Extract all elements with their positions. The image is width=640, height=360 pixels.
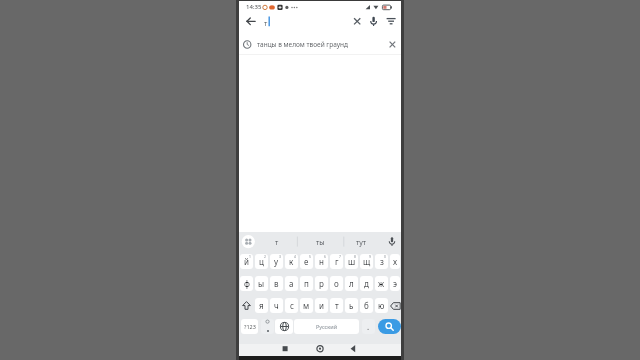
button[interactable] [349, 15, 366, 33]
button[interactable] [239, 298, 254, 313]
button[interactable]: к [285, 254, 298, 269]
staticText: п [304, 278, 309, 289]
button[interactable]: м [300, 298, 313, 313]
button[interactable]: танцы в мелом твоей граунд [239, 36, 401, 53]
button[interactable] [242, 15, 261, 33]
button[interactable]: ты [298, 232, 342, 254]
staticText: м [303, 300, 310, 311]
button[interactable]: ж [375, 276, 388, 291]
staticText: ч [274, 300, 279, 311]
staticText: з [380, 256, 384, 267]
button[interactable]: ч [270, 298, 283, 313]
button[interactable]: щ [360, 254, 373, 269]
staticText: ю [378, 300, 385, 311]
staticText: у [274, 256, 279, 267]
staticText: . [367, 321, 370, 332]
button[interactable]: х [390, 254, 400, 269]
button[interactable]: . [362, 319, 375, 334]
button[interactable]: е [300, 254, 313, 269]
staticText: 5 [309, 254, 311, 258]
staticText: к [289, 256, 294, 267]
staticText: ж [378, 278, 385, 289]
button[interactable]: ь [345, 298, 358, 313]
button[interactable]: ю [375, 298, 388, 313]
button[interactable]: э [390, 276, 400, 291]
button[interactable] [366, 15, 382, 33]
staticText: о [334, 278, 339, 289]
button[interactable]: с [285, 298, 298, 313]
button[interactable]: ц [255, 254, 268, 269]
staticText: т [335, 300, 339, 311]
button[interactable]: в [270, 276, 283, 291]
staticText: ц [259, 256, 264, 267]
button[interactable] [314, 344, 326, 356]
button[interactable]: д [360, 276, 373, 291]
staticText: 0 [384, 254, 386, 258]
staticText: б [364, 300, 369, 311]
button[interactable]: ф [240, 276, 253, 291]
staticText: 4 [294, 254, 296, 258]
staticText: ш [348, 256, 356, 267]
staticText: 9 [369, 254, 371, 258]
button[interactable]: Русский [294, 319, 359, 334]
button[interactable]: я [255, 298, 268, 313]
button[interactable]: н [315, 254, 328, 269]
staticText: тут [356, 238, 367, 248]
staticText: х [393, 256, 398, 267]
button[interactable] [275, 319, 293, 334]
button[interactable]: й [240, 254, 253, 269]
button[interactable]: ш [345, 254, 358, 269]
button[interactable] [384, 233, 400, 253]
button[interactable] [383, 15, 399, 33]
staticText: 8 [354, 254, 356, 258]
staticText: й [244, 256, 249, 267]
staticText: 2 [264, 254, 266, 258]
staticText: н [319, 256, 324, 267]
button[interactable]: т [330, 298, 343, 313]
staticText: ?123 [244, 323, 256, 330]
staticText: ты [316, 238, 325, 248]
button[interactable]: р [315, 276, 328, 291]
button[interactable] [241, 235, 256, 250]
staticText: ы [258, 278, 265, 289]
button[interactable]: п [300, 276, 313, 291]
button[interactable]: г [330, 254, 343, 269]
button[interactable]: тут [343, 232, 379, 254]
staticText: ф [244, 278, 250, 289]
button[interactable]: л [345, 276, 358, 291]
button[interactable]: т [258, 232, 296, 254]
staticText: 1 [249, 254, 251, 258]
staticText: я [259, 300, 264, 311]
staticText: д [364, 278, 369, 289]
staticText: и [319, 300, 324, 311]
button[interactable] [389, 298, 401, 313]
button[interactable] [378, 319, 401, 334]
button[interactable]: б [360, 298, 373, 313]
staticText: г [335, 256, 339, 267]
staticText: т [264, 19, 268, 29]
staticText: щ [363, 256, 371, 267]
staticText: 14:35 [246, 3, 262, 11]
button[interactable] [277, 344, 289, 356]
button[interactable]: ?123 [241, 319, 258, 334]
staticText: т [275, 238, 279, 248]
button[interactable]: з [375, 254, 388, 269]
staticText: 3 [279, 254, 281, 258]
staticText: ь [349, 300, 354, 311]
staticText: 7 [339, 254, 341, 258]
button[interactable]: и [315, 298, 328, 313]
button[interactable] [261, 319, 274, 334]
button[interactable]: о [330, 276, 343, 291]
staticText: танцы в мелом твоей граунд [257, 40, 348, 49]
button[interactable] [347, 344, 359, 356]
staticText: е [304, 256, 309, 267]
button[interactable]: у [270, 254, 283, 269]
staticText: а [289, 278, 294, 289]
staticText: р [319, 278, 324, 289]
staticText: 6 [324, 254, 326, 258]
staticText: э [393, 278, 397, 289]
staticText: л [349, 278, 354, 289]
button[interactable]: т [239, 13, 401, 35]
button[interactable]: ы [255, 276, 268, 291]
button[interactable]: а [285, 276, 298, 291]
